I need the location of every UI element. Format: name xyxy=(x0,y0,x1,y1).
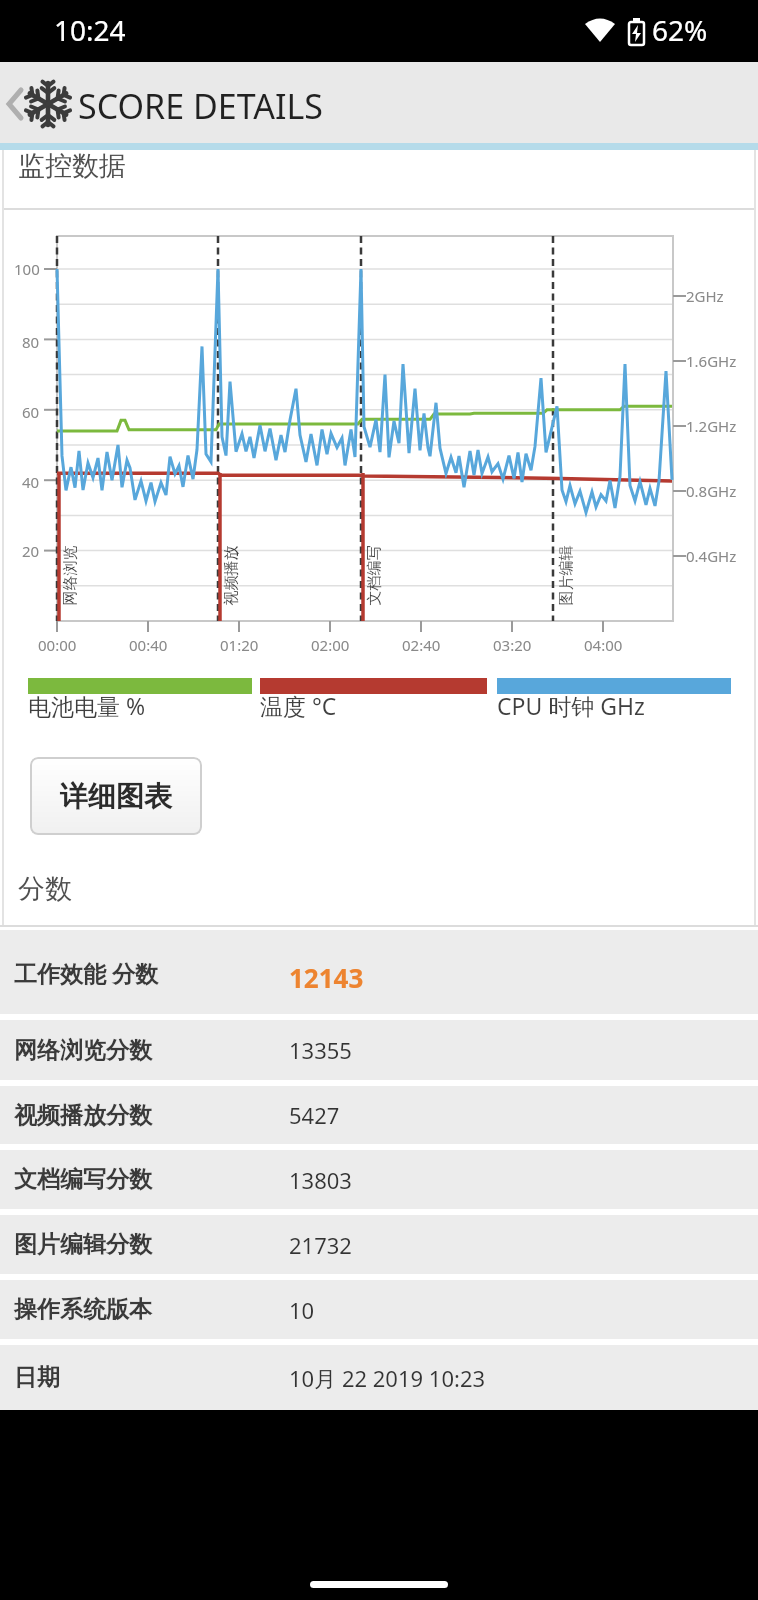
staticText: 00:40 xyxy=(129,635,168,655)
staticText: 03:20 xyxy=(493,635,532,655)
staticText: SCORE DETAILS xyxy=(78,83,323,129)
staticText: 温度 °C xyxy=(260,690,337,721)
staticText: 02:40 xyxy=(402,635,441,655)
staticText: 网络浏览 xyxy=(60,545,79,605)
staticText: 21732 xyxy=(289,1230,352,1260)
staticText: 0.4GHz xyxy=(686,546,737,566)
staticText: 80 xyxy=(22,332,40,352)
staticText: CPU 时钟 GHz xyxy=(497,690,645,721)
staticText: 20 xyxy=(22,541,40,561)
staticText: 监控数据 xyxy=(18,149,126,183)
staticText: 02:00 xyxy=(311,635,350,655)
staticText: 62% xyxy=(652,11,708,49)
staticText: 1.2GHz xyxy=(686,416,737,436)
staticText: 操作系统版本 xyxy=(14,1295,152,1324)
button[interactable]: 操作系统版本 xyxy=(0,1280,758,1339)
staticText: 01:20 xyxy=(220,635,259,655)
staticText: 2GHz xyxy=(686,286,724,306)
staticText: 工作效能 分数 xyxy=(14,957,158,988)
staticText: 视频播放分数 xyxy=(14,1101,152,1130)
staticText: 10:24 xyxy=(54,11,126,49)
staticText: 详细图表 xyxy=(60,779,172,814)
staticText: 1.6GHz xyxy=(686,351,737,371)
button[interactable]: 工作效能 分数 xyxy=(0,930,758,1014)
button[interactable]: 视频播放分数 xyxy=(0,1086,758,1144)
staticText: 图片编辑分数 xyxy=(14,1230,152,1259)
staticText: 60 xyxy=(22,402,40,422)
staticText: 视频播放 xyxy=(221,545,240,605)
button[interactable]: 详细图表 xyxy=(30,757,202,835)
staticText: 0.8GHz xyxy=(686,481,737,501)
staticText: 分数 xyxy=(18,872,72,906)
button[interactable]: 图片编辑分数 xyxy=(0,1215,758,1274)
staticText: 5427 xyxy=(289,1100,340,1130)
staticText: 13355 xyxy=(289,1035,352,1065)
staticText: 10月 22 2019 10:23 xyxy=(289,1363,486,1393)
staticText: 网络浏览分数 xyxy=(14,1036,152,1065)
button[interactable] xyxy=(0,62,40,143)
staticText: 电池电量 % xyxy=(28,690,146,721)
staticText: 13803 xyxy=(289,1165,352,1195)
staticText: 04:00 xyxy=(584,635,623,655)
staticText: 40 xyxy=(22,472,40,492)
staticText: 文档编写 xyxy=(364,545,383,605)
staticText: 日期 xyxy=(14,1363,60,1392)
button[interactable]: 网络浏览分数 xyxy=(0,1020,758,1080)
staticText: 10 xyxy=(289,1295,315,1325)
staticText: 图片编辑 xyxy=(556,545,575,605)
staticText: 12143 xyxy=(289,960,364,995)
staticText: 文档编写分数 xyxy=(14,1165,152,1194)
staticText: 00:00 xyxy=(38,635,77,655)
button[interactable]: 日期 xyxy=(0,1345,758,1410)
staticText: 100 xyxy=(14,259,40,279)
button[interactable]: 文档编写分数 xyxy=(0,1150,758,1209)
